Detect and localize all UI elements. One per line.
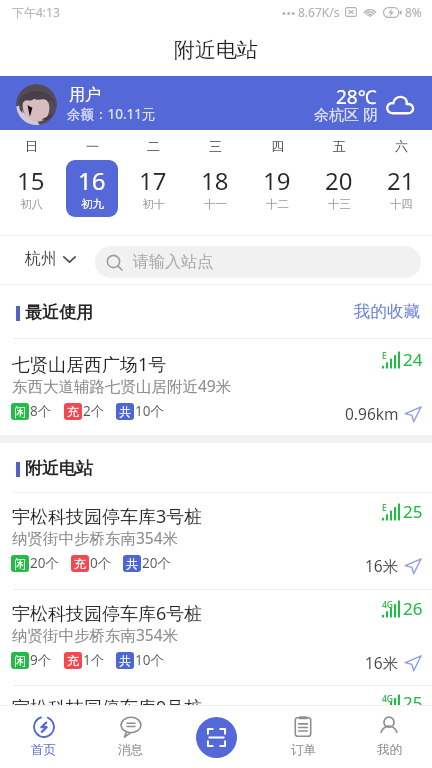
button[interactable]: 16 [66, 160, 118, 217]
staticText: 闲 [14, 653, 26, 668]
staticText: 最近使用 [25, 302, 93, 323]
staticText: 28℃ [336, 84, 377, 110]
staticText: 共 [119, 747, 131, 762]
staticText: 充 [67, 653, 79, 668]
staticText: 16 [78, 164, 106, 197]
button[interactable]: 19 [251, 160, 303, 217]
button[interactable]: 20 [313, 160, 365, 217]
staticText: 2个 [83, 402, 105, 420]
button[interactable]: 订单 [260, 705, 346, 768]
staticText: 初十 [142, 197, 165, 211]
staticText: 纳贤街中步桥东南354米 [12, 527, 179, 548]
staticText: 宇松科技园停车库3号桩 [12, 504, 203, 529]
staticText: 9个 [30, 651, 52, 669]
staticText: E [382, 502, 387, 514]
button[interactable]: 我的 [346, 705, 432, 768]
staticText: 附近电站 [25, 458, 93, 479]
staticText: 4G [382, 599, 394, 611]
staticText: 26 [403, 597, 423, 620]
staticText: 日 [25, 138, 38, 154]
staticText: 二 [147, 138, 160, 154]
staticText: 15 [17, 164, 45, 197]
button[interactable]: 请输入站点 [95, 246, 421, 278]
staticText: 共 [126, 556, 138, 571]
staticText: 1个 [83, 651, 105, 669]
staticText: 余额：10.11元 [67, 105, 156, 123]
button[interactable]: 宇松科技园停车库6号桩 [0, 590, 432, 685]
button[interactable]: 宇松科技园停车库3号桩 [0, 493, 432, 589]
staticText: 共 [119, 653, 131, 668]
staticText: 20个 [142, 554, 171, 572]
staticText: 附近电站 [174, 37, 258, 63]
staticText: 10个 [135, 745, 164, 763]
staticText: 余杭区 阴 [314, 104, 378, 124]
staticText: 纳贤街中步桥东南354米 [12, 718, 179, 739]
staticText: 请输入站点 [133, 252, 213, 272]
staticText: 三 [209, 138, 222, 154]
staticText: 17 [139, 164, 167, 197]
button[interactable]: 首页 [0, 705, 87, 768]
button[interactable]: 18 [189, 160, 241, 217]
staticText: 七贤山居西广场1号 [12, 352, 167, 377]
staticText: 初八 [20, 197, 43, 211]
staticText: 20个 [30, 554, 59, 572]
staticText: 8% [405, 4, 422, 20]
staticText: 4G [382, 693, 394, 705]
staticText: 10个 [135, 651, 164, 669]
staticText: 20 [325, 164, 353, 197]
staticText: 下午4:13 [12, 4, 60, 20]
other: 导航 [404, 654, 422, 672]
staticText: 用户 [69, 85, 101, 105]
staticText: 18 [201, 164, 229, 197]
staticText: 十一 [204, 197, 227, 211]
button[interactable]: 七贤山居西广场1号 [0, 339, 432, 435]
staticText: 宇松科技园停车库9号桩 [12, 695, 203, 720]
staticText: 十三 [328, 197, 351, 211]
staticText: 消息 [118, 742, 143, 758]
staticText: 纳贤街中步桥东南354米 [12, 624, 179, 645]
staticText: 25 [403, 500, 423, 523]
staticText: 订单 [291, 742, 316, 758]
button[interactable]: 15 [5, 160, 57, 217]
staticText: 初九 [81, 197, 104, 211]
button[interactable]: 宇松科技园停车库9号桩 [0, 686, 432, 768]
staticText: 六 [395, 138, 408, 154]
staticText: 8.67K/s [298, 4, 340, 20]
button[interactable]: 用户 [0, 76, 432, 130]
staticText: 四 [271, 138, 284, 154]
staticText: 0.96km [345, 403, 399, 424]
button[interactable]: 扫一扫 [196, 717, 237, 758]
staticText: 0个 [90, 554, 112, 572]
staticText: 杭州 [25, 249, 57, 269]
staticText: 19 [263, 164, 291, 197]
other: 导航 [404, 557, 422, 575]
button[interactable]: 我的收藏 [342, 293, 432, 330]
staticText: 21 [387, 164, 415, 197]
staticText: 首页 [31, 742, 56, 758]
other: 导航 [404, 405, 422, 423]
button[interactable]: 21 [375, 160, 427, 217]
staticText: 10个 [135, 402, 164, 420]
button[interactable]: 17 [127, 160, 179, 217]
staticText: 我的 [377, 742, 402, 758]
staticText: 8个 [30, 402, 52, 420]
staticText: 东西大道辅路七贤山居附近49米 [12, 375, 232, 396]
button[interactable]: 杭州 [18, 245, 83, 273]
staticText: 闲 [14, 404, 26, 419]
button[interactable]: 消息 [87, 705, 174, 768]
staticText: 9个 [30, 745, 52, 763]
staticText: 充 [67, 404, 79, 419]
staticText: E [382, 350, 387, 362]
staticText: 我的收藏 [354, 301, 420, 322]
staticText: 16米 [365, 555, 399, 576]
staticText: 十二 [266, 197, 289, 211]
staticText: 充 [74, 556, 86, 571]
staticText: 闲 [14, 556, 26, 571]
staticText: 16米 [365, 652, 399, 673]
staticText: 十四 [390, 197, 413, 211]
staticText: 五 [333, 138, 346, 154]
